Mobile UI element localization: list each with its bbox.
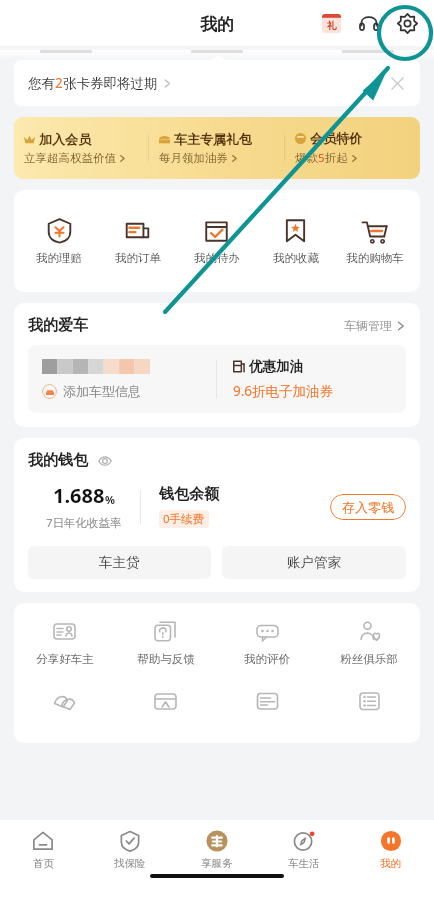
staticText: 存入零钱 (342, 499, 394, 515)
staticText: 我的理赔 (36, 251, 82, 265)
staticText: 每月领加油券 (159, 151, 228, 165)
button[interactable]: 我的理赔 (20, 211, 98, 271)
button[interactable] (216, 688, 318, 713)
staticText: 您有 (28, 75, 55, 92)
button[interactable]: 车主贷 (28, 546, 211, 579)
staticText: 我的爱车 (28, 316, 88, 335)
staticText: 我的钱包 (28, 451, 88, 470)
staticText: 首页 (33, 857, 54, 870)
button[interactable]: 我的 (347, 824, 434, 870)
button[interactable]: 我的收藏 (256, 211, 335, 271)
staticText: 0手续费 (163, 511, 205, 527)
button[interactable]: 设置 (394, 10, 420, 36)
staticText: 优惠加油 (249, 358, 303, 375)
staticText: % (105, 492, 115, 507)
staticText: 5 (318, 150, 325, 166)
button[interactable]: 客服 (356, 10, 382, 36)
staticText: 我的评价 (244, 652, 290, 666)
staticText: 分享好车主 (36, 652, 94, 666)
button[interactable] (318, 688, 420, 713)
button[interactable]: 关闭 (386, 72, 408, 94)
button[interactable]: 我的待办 (177, 211, 256, 271)
staticText: 立享超高权益价值 (24, 151, 116, 165)
button[interactable]: 我的购物车 (335, 211, 414, 271)
staticText: 我的订单 (115, 251, 161, 265)
button[interactable]: 账户管家 (222, 546, 406, 579)
button[interactable]: 添加车型信息 (28, 345, 406, 413)
button[interactable]: 车主专属礼包 (149, 131, 284, 165)
staticText: 爆款 (295, 151, 318, 165)
staticText: 车辆管理 (344, 318, 392, 333)
button[interactable]: 找保险 (86, 824, 173, 870)
staticText: 礼 (327, 19, 337, 32)
staticText: 我的待办 (194, 251, 240, 265)
button[interactable]: 享服务 (173, 824, 260, 870)
staticText: 添加车型信息 (63, 383, 141, 399)
staticText: 找保险 (114, 857, 146, 870)
button[interactable]: 存入零钱 (330, 494, 406, 520)
button[interactable]: 会员特价 (285, 130, 420, 166)
staticText: 车主专属礼包 (174, 131, 252, 147)
button[interactable]: 我的评价 (216, 617, 318, 668)
button[interactable]: 您有 (14, 60, 420, 106)
button[interactable]: 1.688 (28, 482, 140, 531)
button[interactable]: 车生活 (260, 824, 347, 870)
staticText: 钱包余额 (159, 485, 219, 504)
button[interactable]: 我的订单 (98, 211, 177, 271)
staticText: 我的 (200, 14, 234, 35)
staticText: 加入会员 (39, 131, 91, 147)
staticText: 折起 (325, 151, 348, 165)
button[interactable]: 车辆管理 (344, 318, 406, 333)
button[interactable]: 加入会员 (14, 131, 148, 165)
button[interactable]: 粉丝俱乐部 (318, 617, 420, 668)
staticText: 9.6折电子加油券 (233, 382, 334, 400)
staticText: 会员特价 (310, 130, 362, 146)
staticText: 帮助与反馈 (137, 652, 195, 666)
button[interactable]: 礼包 (318, 10, 344, 36)
button[interactable]: 钱包余额 (159, 485, 330, 528)
button[interactable] (115, 688, 216, 713)
button[interactable]: 显示金额 (96, 452, 114, 470)
staticText: 1.688 (53, 482, 105, 509)
staticText: 账户管家 (287, 554, 341, 571)
staticText: 我的 (380, 857, 401, 870)
staticText: 2 (55, 74, 63, 92)
staticText: 车主贷 (99, 554, 140, 571)
staticText: 粉丝俱乐部 (340, 652, 398, 666)
button[interactable]: 首页 (0, 824, 86, 870)
button[interactable] (14, 688, 115, 713)
staticText: 享服务 (201, 857, 233, 870)
button[interactable]: 帮助与反馈 (115, 617, 216, 668)
staticText: 7日年化收益率 (46, 515, 122, 531)
staticText: 我的购物车 (346, 251, 404, 265)
staticText: 张卡券即将过期 (63, 75, 158, 92)
staticText: 我的收藏 (273, 251, 319, 265)
staticText: 车生活 (288, 857, 320, 870)
button[interactable]: 分享好车主 (14, 617, 115, 668)
